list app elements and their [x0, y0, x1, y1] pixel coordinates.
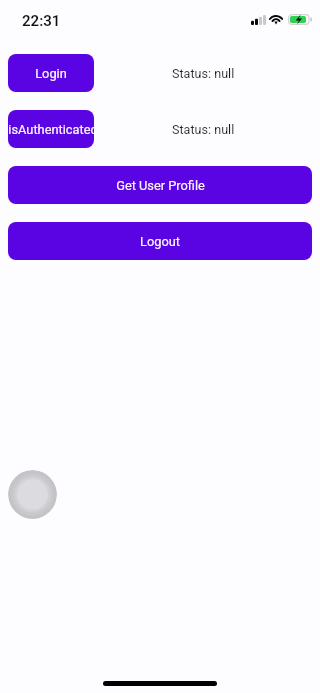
button[interactable]: Profile avatar	[8, 470, 57, 519]
staticText: Status: null	[172, 122, 235, 137]
staticText: Logout	[140, 234, 180, 249]
other: Cellular signal strength	[251, 15, 266, 25]
other: Battery charging	[288, 14, 312, 25]
button[interactable]: isAuthenticated	[8, 110, 94, 148]
staticText: isAuthenticated	[8, 122, 94, 137]
button[interactable]: Logout	[8, 222, 312, 260]
staticText: Get User Profile	[116, 178, 205, 193]
button[interactable]: Get User Profile	[8, 166, 312, 204]
other: Wi-Fi connected	[269, 14, 283, 24]
staticText: Login	[35, 66, 67, 81]
staticText: 22:31	[22, 12, 61, 30]
button[interactable]: Login	[8, 54, 94, 92]
staticText: Status: null	[172, 66, 235, 81]
